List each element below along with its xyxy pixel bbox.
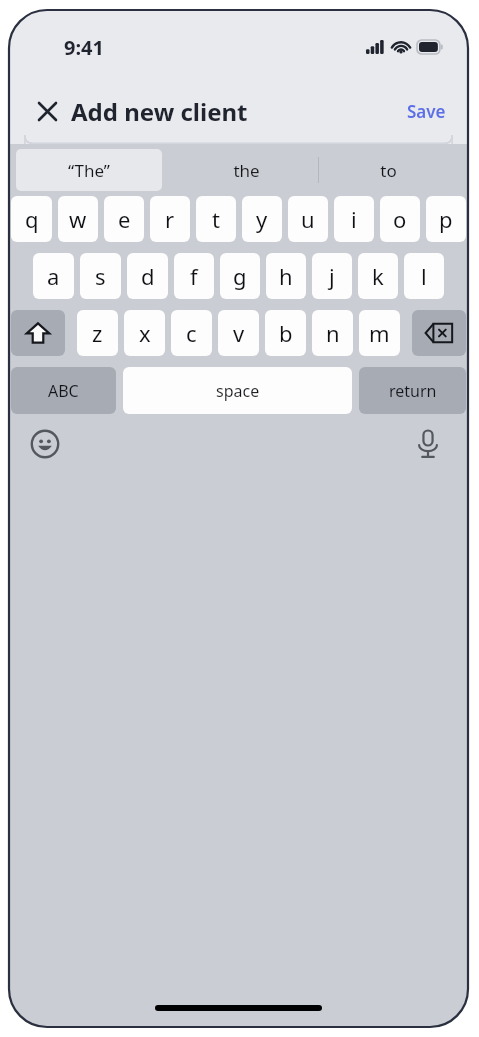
staticText: q bbox=[25, 204, 39, 234]
button[interactable]: Save bbox=[399, 94, 454, 129]
staticText: t bbox=[212, 204, 220, 234]
staticText: c bbox=[186, 318, 197, 348]
staticText: s bbox=[95, 261, 106, 291]
button[interactable]: ABC bbox=[11, 367, 116, 414]
button[interactable]: f bbox=[174, 253, 214, 299]
staticText: k bbox=[372, 261, 384, 291]
button[interactable]: space bbox=[123, 367, 352, 414]
button[interactable]: Close bbox=[27, 91, 67, 131]
button[interactable]: Dictation bbox=[408, 424, 448, 464]
staticText: d bbox=[141, 261, 155, 291]
button[interactable]: l bbox=[404, 253, 444, 299]
staticText: i bbox=[351, 204, 357, 234]
button[interactable]: e bbox=[104, 196, 144, 242]
button[interactable]: a bbox=[33, 253, 74, 299]
staticText: space bbox=[216, 380, 260, 402]
button[interactable]: x bbox=[124, 310, 165, 356]
button[interactable]: n bbox=[312, 310, 353, 356]
button[interactable]: d bbox=[127, 253, 168, 299]
staticText: x bbox=[139, 318, 151, 348]
staticText: the bbox=[233, 159, 260, 182]
button[interactable]: k bbox=[358, 253, 398, 299]
button[interactable]: c bbox=[171, 310, 212, 356]
button[interactable]: h bbox=[266, 253, 306, 299]
staticText: return bbox=[389, 380, 437, 402]
staticText: “The” bbox=[68, 159, 110, 182]
staticText: l bbox=[421, 261, 427, 291]
staticText: o bbox=[393, 204, 407, 234]
staticText: Save bbox=[407, 100, 446, 123]
staticText: a bbox=[47, 261, 60, 291]
staticText: p bbox=[439, 204, 453, 234]
button[interactable]: m bbox=[359, 310, 400, 356]
button[interactable]: q bbox=[11, 196, 52, 242]
staticText: j bbox=[329, 261, 335, 291]
staticText: to bbox=[380, 159, 397, 182]
button[interactable]: t bbox=[196, 196, 236, 242]
button[interactable]: b bbox=[265, 310, 306, 356]
button[interactable]: u bbox=[288, 196, 328, 242]
button[interactable]: g bbox=[220, 253, 260, 299]
button[interactable]: Shift bbox=[11, 310, 65, 356]
button[interactable]: v bbox=[218, 310, 259, 356]
staticText: f bbox=[190, 261, 198, 291]
button[interactable]: return bbox=[359, 367, 466, 414]
button[interactable]: to bbox=[318, 149, 458, 191]
staticText: h bbox=[279, 261, 293, 291]
button[interactable]: w bbox=[58, 196, 98, 242]
button[interactable]: o bbox=[380, 196, 420, 242]
button[interactable]: Backspace bbox=[412, 310, 466, 356]
staticText: v bbox=[233, 318, 245, 348]
staticText: e bbox=[118, 204, 131, 234]
staticText: m bbox=[369, 318, 390, 348]
button[interactable]: s bbox=[80, 253, 121, 299]
staticText: r bbox=[165, 204, 175, 234]
staticText: w bbox=[69, 204, 87, 234]
button[interactable]: i bbox=[334, 196, 374, 242]
button[interactable]: r bbox=[150, 196, 190, 242]
button[interactable]: y bbox=[242, 196, 282, 242]
button[interactable]: p bbox=[426, 196, 466, 242]
staticText: 9:41 bbox=[64, 34, 104, 61]
staticText: g bbox=[233, 261, 247, 291]
staticText: n bbox=[326, 318, 340, 348]
staticText: b bbox=[279, 318, 293, 348]
button[interactable]: j bbox=[312, 253, 352, 299]
button[interactable]: “The” bbox=[16, 149, 162, 191]
staticText: Add new client bbox=[71, 95, 248, 128]
button[interactable]: Emoji bbox=[25, 424, 65, 464]
button[interactable]: the bbox=[174, 149, 319, 191]
staticText: y bbox=[256, 204, 268, 234]
button[interactable]: z bbox=[77, 310, 118, 356]
staticText: u bbox=[301, 204, 315, 234]
staticText: z bbox=[92, 318, 103, 348]
staticText: ABC bbox=[48, 380, 79, 402]
